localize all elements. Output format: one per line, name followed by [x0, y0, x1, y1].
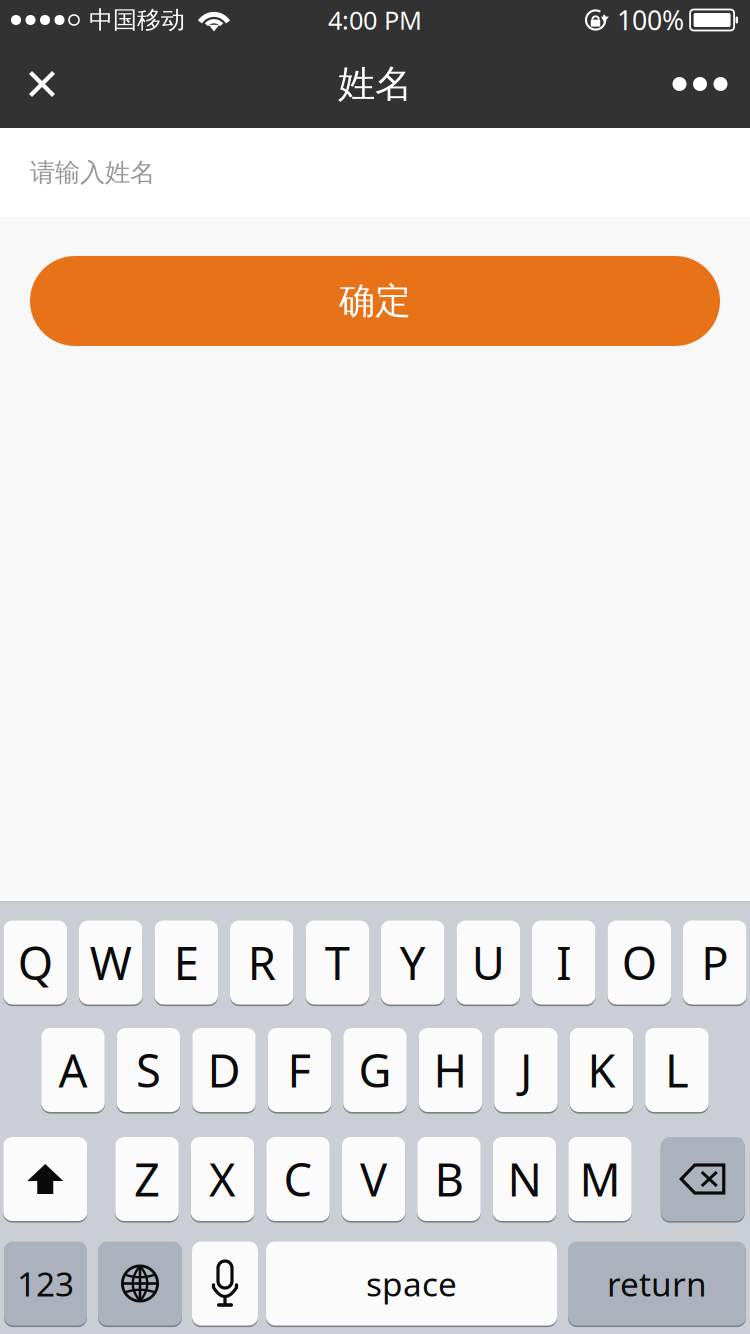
button[interactable]: F: [268, 1028, 331, 1112]
staticText: T: [325, 932, 350, 993]
staticText: 123: [17, 1261, 74, 1306]
staticText: L: [665, 1040, 689, 1100]
button[interactable]: K: [570, 1028, 633, 1112]
staticText: D: [207, 1040, 240, 1100]
staticText: 确定: [339, 279, 411, 323]
button[interactable]: More options: [656, 40, 744, 128]
staticText: A: [58, 1040, 87, 1100]
staticText: N: [507, 1149, 541, 1209]
button[interactable]: Delete: [661, 1137, 745, 1221]
staticText: C: [283, 1149, 312, 1209]
button[interactable]: I: [532, 920, 595, 1004]
staticText: K: [587, 1040, 615, 1100]
button[interactable]: Q: [3, 920, 67, 1004]
staticText: X: [209, 1149, 236, 1209]
button[interactable]: S: [117, 1028, 180, 1112]
staticText: O: [622, 932, 657, 993]
button[interactable]: B: [417, 1137, 481, 1221]
staticText: Q: [18, 932, 53, 993]
staticText: B: [434, 1149, 463, 1209]
button[interactable]: G: [343, 1028, 407, 1112]
staticText: P: [701, 932, 728, 993]
button[interactable]: Next keyboard: [98, 1241, 182, 1325]
button[interactable]: H: [419, 1028, 482, 1112]
staticText: R: [248, 932, 276, 993]
button[interactable]: W: [79, 920, 142, 1004]
staticText: Y: [400, 932, 426, 993]
staticText: space: [366, 1261, 457, 1306]
staticText: J: [520, 1040, 532, 1100]
staticText: 姓名: [338, 61, 412, 107]
button[interactable]: D: [192, 1028, 256, 1112]
button[interactable]: Shift: [3, 1137, 87, 1221]
staticText: S: [136, 1040, 161, 1100]
staticText: H: [433, 1040, 467, 1100]
button[interactable]: N: [493, 1137, 556, 1221]
button[interactable]: 123: [4, 1241, 87, 1325]
staticText: 中国移动: [89, 5, 185, 35]
button[interactable]: Y: [381, 920, 444, 1004]
button[interactable]: Close: [0, 40, 84, 128]
button[interactable]: R: [230, 920, 293, 1004]
staticText: return: [607, 1261, 707, 1306]
staticText: W: [90, 932, 132, 993]
button[interactable]: X: [191, 1137, 254, 1221]
button[interactable]: 确定: [30, 256, 720, 346]
button[interactable]: J: [494, 1028, 558, 1112]
button[interactable]: M: [568, 1137, 632, 1221]
staticText: F: [287, 1040, 311, 1100]
button[interactable]: T: [305, 920, 369, 1004]
staticText: E: [174, 932, 199, 993]
staticText: M: [579, 1149, 620, 1209]
button[interactable]: Dictation: [192, 1241, 258, 1325]
button[interactable]: A: [41, 1028, 105, 1112]
button[interactable]: V: [342, 1137, 405, 1221]
staticText: I: [556, 932, 571, 993]
button[interactable]: L: [645, 1028, 709, 1112]
staticText: 100%: [617, 2, 684, 38]
staticText: Z: [134, 1149, 160, 1209]
button[interactable]: E: [154, 920, 218, 1004]
staticText: V: [360, 1149, 387, 1209]
staticText: U: [472, 932, 505, 993]
staticText: G: [358, 1040, 391, 1100]
staticText: 4:00 PM: [328, 3, 422, 37]
button[interactable]: space: [266, 1241, 557, 1325]
button[interactable]: Z: [115, 1137, 179, 1221]
button[interactable]: O: [607, 920, 671, 1004]
button[interactable]: return: [568, 1241, 746, 1325]
button[interactable]: U: [456, 920, 520, 1004]
button[interactable]: C: [266, 1137, 330, 1221]
staticText: 请输入姓名: [30, 157, 155, 188]
button[interactable]: P: [683, 920, 746, 1004]
